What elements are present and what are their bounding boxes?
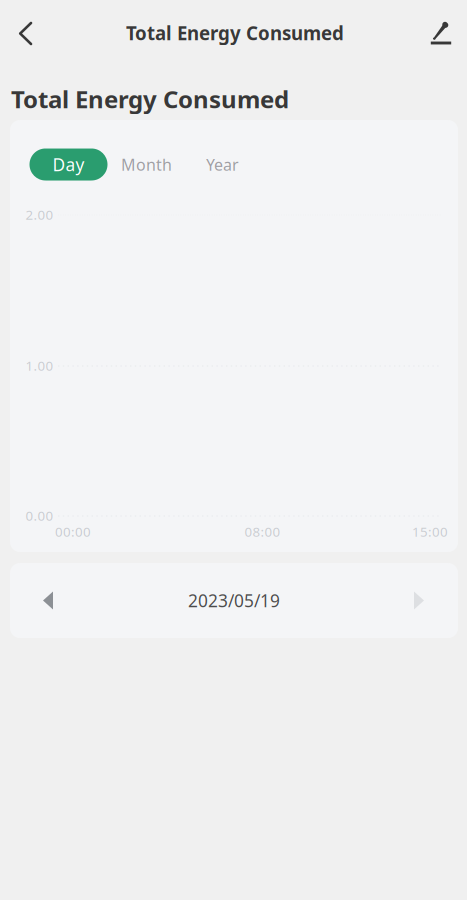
button[interactable]: Next day (397, 578, 441, 622)
staticText: Day (52, 153, 84, 176)
button[interactable]: Year (193, 148, 251, 180)
staticText: Year (206, 154, 239, 175)
button[interactable]: Month (111, 148, 181, 180)
button[interactable]: Edit (418, 10, 464, 56)
staticText: 0.00 (25, 507, 53, 524)
staticText: Total Energy Consumed (11, 83, 289, 115)
button[interactable]: Previous day (26, 578, 70, 622)
staticText: 2023/05/19 (188, 589, 280, 612)
button[interactable]: Day (29, 148, 107, 180)
staticText: Month (121, 154, 172, 175)
staticText: 1.00 (25, 357, 53, 374)
staticText: 00:00 (55, 523, 91, 540)
staticText: 15:00 (412, 523, 448, 540)
staticText: 08:00 (244, 523, 280, 540)
staticText: Total Energy Consumed (126, 21, 344, 45)
staticText: 2.00 (25, 206, 53, 223)
button[interactable]: Back (3, 10, 49, 56)
